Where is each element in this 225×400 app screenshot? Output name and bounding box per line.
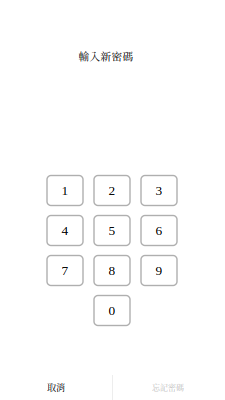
button[interactable]: 1 (47, 175, 83, 205)
staticText: 0 (108, 303, 115, 318)
button[interactable]: 3 (141, 175, 177, 205)
staticText: 忘記密碼 (152, 381, 184, 393)
button[interactable]: 忘記密碼 (112, 372, 224, 400)
staticText: 1 (61, 183, 68, 198)
staticText: 6 (155, 223, 162, 238)
staticText: 7 (61, 263, 68, 278)
button[interactable]: 0 (94, 295, 130, 325)
button[interactable]: 4 (47, 215, 83, 245)
staticText: 9 (155, 263, 162, 278)
staticText: 取消 (47, 380, 65, 394)
button[interactable]: 2 (94, 175, 130, 205)
button[interactable]: 取消 (0, 372, 112, 400)
button[interactable]: 8 (94, 255, 130, 285)
staticText: 5 (108, 223, 115, 238)
button[interactable]: 9 (141, 255, 177, 285)
staticText: 輸入新密碼 (78, 48, 133, 64)
button[interactable]: 5 (94, 215, 130, 245)
staticText: 3 (155, 183, 162, 198)
button[interactable]: 7 (47, 255, 83, 285)
staticText: 8 (108, 263, 115, 278)
staticText: 2 (108, 183, 115, 198)
staticText: 4 (61, 223, 68, 238)
button[interactable]: 6 (141, 215, 177, 245)
